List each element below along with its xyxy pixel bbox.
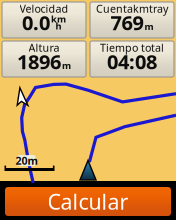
staticText: m xyxy=(144,20,153,33)
staticText: 04:08 xyxy=(107,48,157,75)
staticText: 20m xyxy=(15,153,37,168)
staticText: Cuentakmtray xyxy=(96,1,168,16)
staticText: 1896 xyxy=(17,48,61,75)
staticText: m xyxy=(62,59,71,72)
staticText: 769 xyxy=(110,9,143,36)
staticText: Tiempo total xyxy=(100,40,164,55)
staticText: km xyxy=(51,13,66,25)
staticText: h xyxy=(55,20,61,32)
staticText: Altura xyxy=(28,40,59,55)
staticText: 0.0 xyxy=(22,9,50,36)
button[interactable]: Calcular xyxy=(5,187,171,216)
staticText: Velocidad xyxy=(19,1,68,16)
staticText: Calcular xyxy=(47,187,128,216)
